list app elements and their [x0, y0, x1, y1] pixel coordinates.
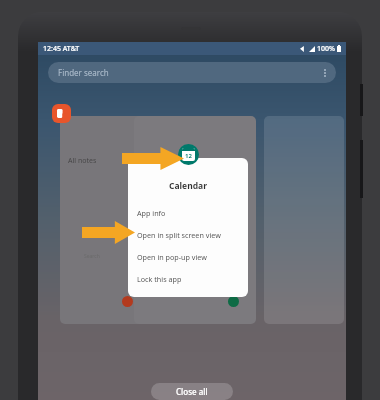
staticText: Calendar [128, 180, 248, 192]
button[interactable]: Open in split screen view [128, 224, 248, 246]
button[interactable]: All notes [60, 116, 150, 324]
staticText: All notes [68, 156, 97, 166]
staticText: 100% [317, 44, 335, 54]
button[interactable] [134, 116, 256, 324]
button[interactable]: Open in pop-up view [128, 246, 248, 268]
staticText: 12 [182, 152, 195, 160]
button[interactable]: Lock this app [128, 268, 248, 290]
staticText: Finder search [58, 67, 109, 78]
button[interactable] [264, 116, 344, 324]
other: Calendar [178, 144, 199, 165]
button[interactable]: Close all [151, 383, 233, 400]
staticText: Search [84, 253, 100, 260]
staticText: Close all [176, 386, 208, 397]
button[interactable]: Finder search [48, 62, 336, 83]
staticText: Open in pop-up view [137, 252, 207, 262]
staticText: Lock this app [137, 274, 182, 284]
staticText: App info [137, 208, 166, 218]
staticText: Open in split screen view [137, 230, 221, 240]
button[interactable]: App info [128, 202, 248, 224]
staticText: 12:45 AT&T [43, 44, 80, 54]
